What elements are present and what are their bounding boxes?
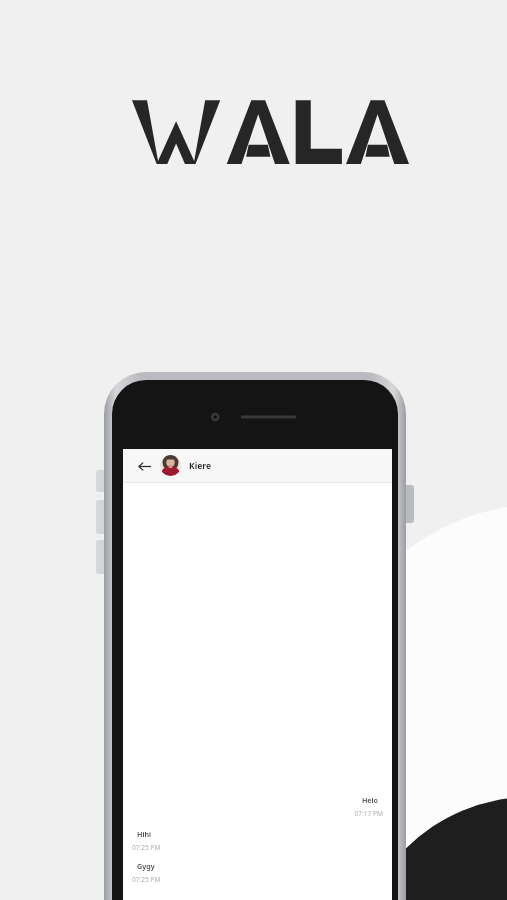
button[interactable]: Helo xyxy=(132,795,383,818)
staticText: 07:25 PM xyxy=(132,875,383,884)
staticText: Helo xyxy=(137,795,378,805)
button[interactable]: Gygy xyxy=(132,861,383,884)
staticText: Hihi xyxy=(137,829,378,839)
staticText: 07:25 PM xyxy=(132,843,383,852)
button[interactable]: Back xyxy=(123,449,392,482)
staticText: 07:17 PM xyxy=(132,809,383,818)
button[interactable]: Hihi xyxy=(132,829,383,852)
staticText: Kiere xyxy=(189,460,211,472)
staticText: Gygy xyxy=(137,861,378,871)
button[interactable]: Back xyxy=(135,457,153,475)
